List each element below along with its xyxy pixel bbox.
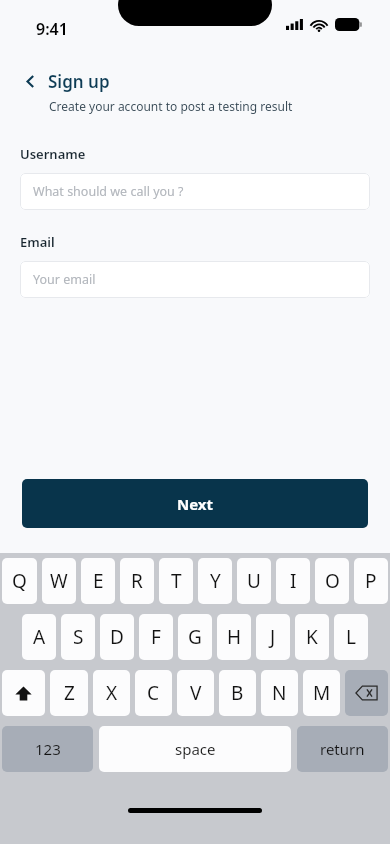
staticText: U <box>247 568 261 594</box>
button[interactable]: Q <box>2 558 37 604</box>
staticText: V <box>190 680 202 706</box>
staticText: Z <box>64 680 75 706</box>
button[interactable]: S <box>61 614 95 660</box>
staticText: H <box>227 624 242 650</box>
button[interactable]: E <box>81 558 115 604</box>
staticText: Y <box>210 568 221 594</box>
staticText: X <box>106 680 118 706</box>
button[interactable]: U <box>237 558 271 604</box>
button[interactable]: space <box>99 726 291 772</box>
staticText: P <box>365 568 377 594</box>
button[interactable]: A <box>22 614 56 660</box>
button[interactable]: Y <box>198 558 232 604</box>
button[interactable]: O <box>315 558 349 604</box>
button[interactable]: G <box>178 614 212 660</box>
staticText: 123 <box>35 739 61 759</box>
button[interactable]: J <box>256 614 290 660</box>
button[interactable]: H <box>217 614 251 660</box>
button[interactable]: Back <box>18 69 110 93</box>
button[interactable]: L <box>334 614 368 660</box>
staticText: Q <box>12 568 27 594</box>
button[interactable]: B <box>219 670 256 716</box>
staticText: O <box>325 568 340 594</box>
button[interactable]: return <box>297 726 388 772</box>
staticText: W <box>50 568 68 594</box>
staticText: Next <box>177 494 214 514</box>
staticText: R <box>131 568 143 594</box>
staticText: K <box>306 624 318 650</box>
staticText: J <box>270 624 276 650</box>
button[interactable]: Shift <box>2 670 45 716</box>
staticText: L <box>346 624 356 650</box>
staticText: Username <box>20 145 86 163</box>
staticText: A <box>33 624 46 650</box>
button[interactable]: N <box>261 670 298 716</box>
staticText: D <box>110 624 124 650</box>
button[interactable]: W <box>42 558 76 604</box>
button[interactable]: F <box>139 614 173 660</box>
button[interactable]: Your email <box>20 261 370 298</box>
button[interactable]: Z <box>50 670 88 716</box>
staticText: B <box>231 680 244 706</box>
button[interactable]: T <box>159 558 193 604</box>
button[interactable]: P <box>354 558 388 604</box>
staticText: space <box>175 739 216 759</box>
button[interactable]: I <box>276 558 310 604</box>
staticText: S <box>73 624 84 650</box>
staticText: Sign up <box>48 70 110 93</box>
button[interactable]: K <box>295 614 329 660</box>
button[interactable]: V <box>177 670 214 716</box>
staticText: G <box>188 624 202 650</box>
button[interactable]: 123 <box>2 726 93 772</box>
staticText: Email <box>20 233 55 251</box>
staticText: return <box>320 739 365 759</box>
other: Back <box>18 69 42 93</box>
button[interactable]: M <box>303 670 340 716</box>
staticText: T <box>171 568 182 594</box>
button[interactable]: X <box>93 670 130 716</box>
staticText: I <box>290 568 297 594</box>
button[interactable]: D <box>100 614 134 660</box>
staticText: What should we call you ? <box>33 183 184 200</box>
staticText: N <box>272 680 287 706</box>
staticText: Create your account to post a testing re… <box>49 98 293 114</box>
staticText: 9:41 <box>36 18 68 40</box>
button[interactable]: C <box>135 670 172 716</box>
button[interactable]: What should we call you ? <box>20 173 370 210</box>
staticText: F <box>151 624 161 650</box>
staticText: E <box>93 568 104 594</box>
staticText: C <box>147 680 160 706</box>
button[interactable]: R <box>120 558 154 604</box>
staticText: M <box>313 680 331 706</box>
button[interactable]: Next <box>22 479 368 528</box>
button[interactable]: Backspace <box>345 670 388 716</box>
staticText: Your email <box>33 271 96 288</box>
